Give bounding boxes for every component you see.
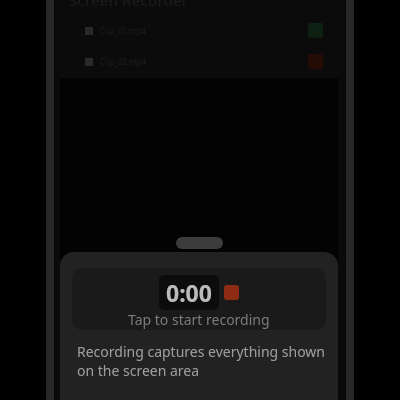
button[interactable]: Record [224,285,239,300]
button[interactable]: Clip_01.mp4 [85,23,323,38]
staticText: 0:00 [166,277,212,308]
staticText: Clip_01.mp4 [100,25,146,36]
staticText: Clip_02.mp4 [100,56,146,67]
staticText: Screen Recorder [69,0,189,10]
staticText: Recording captures everything shown on t… [77,342,330,380]
staticText: Tap to start recording [128,310,270,329]
button[interactable]: Clip_02.mp4 [85,54,323,69]
